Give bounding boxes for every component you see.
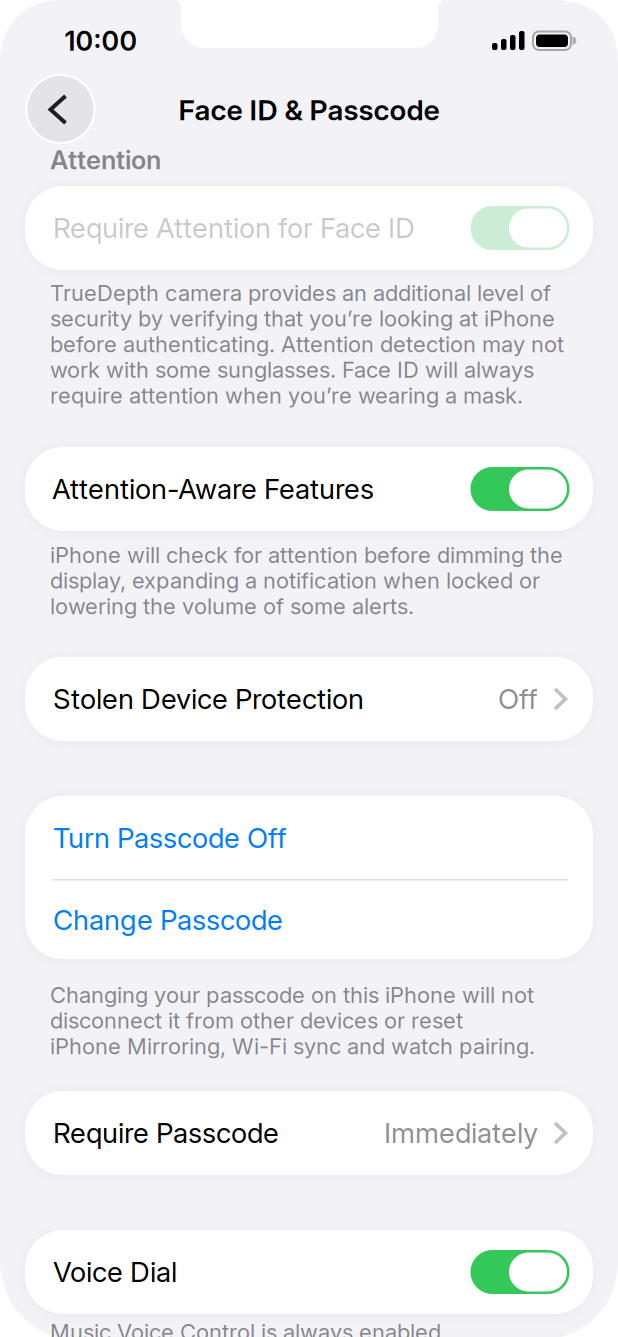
button[interactable]: Stolen Device Protection — [25, 657, 593, 741]
button[interactable]: Require Attention for Face ID — [470, 206, 569, 250]
staticText: work with some sunglasses. Face ID will … — [50, 356, 534, 383]
staticText: require attention when you’re wearing a … — [50, 382, 523, 409]
staticText: before authenticating. Attention detecti… — [50, 331, 564, 357]
staticText: Voice Dial — [53, 1255, 177, 1289]
staticText: Music Voice Control is always enabled — [50, 1319, 441, 1337]
staticText: Stolen Device Protection — [53, 682, 364, 716]
staticText: iPhone will check for attention before d… — [50, 542, 563, 568]
staticText: Off — [498, 682, 538, 716]
staticText: Attention — [50, 144, 161, 175]
button[interactable]: Change Passcode — [25, 881, 593, 959]
staticText: Attention-Aware Features — [52, 472, 374, 506]
staticText: Changing your passcode on this iPhone wi… — [50, 982, 534, 1008]
staticText: disconnect it from other devices or rese… — [50, 1007, 463, 1034]
staticText: Face ID & Passcode — [178, 93, 439, 127]
button[interactable]: Require Passcode — [25, 1091, 593, 1175]
staticText: Turn Passcode Off — [53, 821, 287, 855]
staticText: TrueDepth camera provides an additional … — [50, 280, 551, 306]
staticText: Require Passcode — [53, 1116, 279, 1150]
staticText: 10:00 — [64, 25, 137, 57]
button[interactable]: Back — [26, 75, 94, 143]
staticText: Require Attention for Face ID — [53, 211, 415, 245]
button[interactable]: Turn Passcode Off — [25, 796, 593, 879]
staticText: lowering the volume of some alerts. — [50, 593, 414, 619]
button[interactable]: Attention-Aware Features — [470, 467, 569, 511]
staticText: display, expanding a notification when l… — [50, 567, 540, 594]
button[interactable]: Voice Dial — [470, 1250, 569, 1294]
staticText: iPhone Mirroring, Wi-Fi sync and watch p… — [50, 1033, 535, 1059]
staticText: Immediately — [384, 1116, 538, 1150]
staticText: Change Passcode — [53, 903, 283, 937]
staticText: security by verifying that you’re lookin… — [50, 305, 555, 332]
